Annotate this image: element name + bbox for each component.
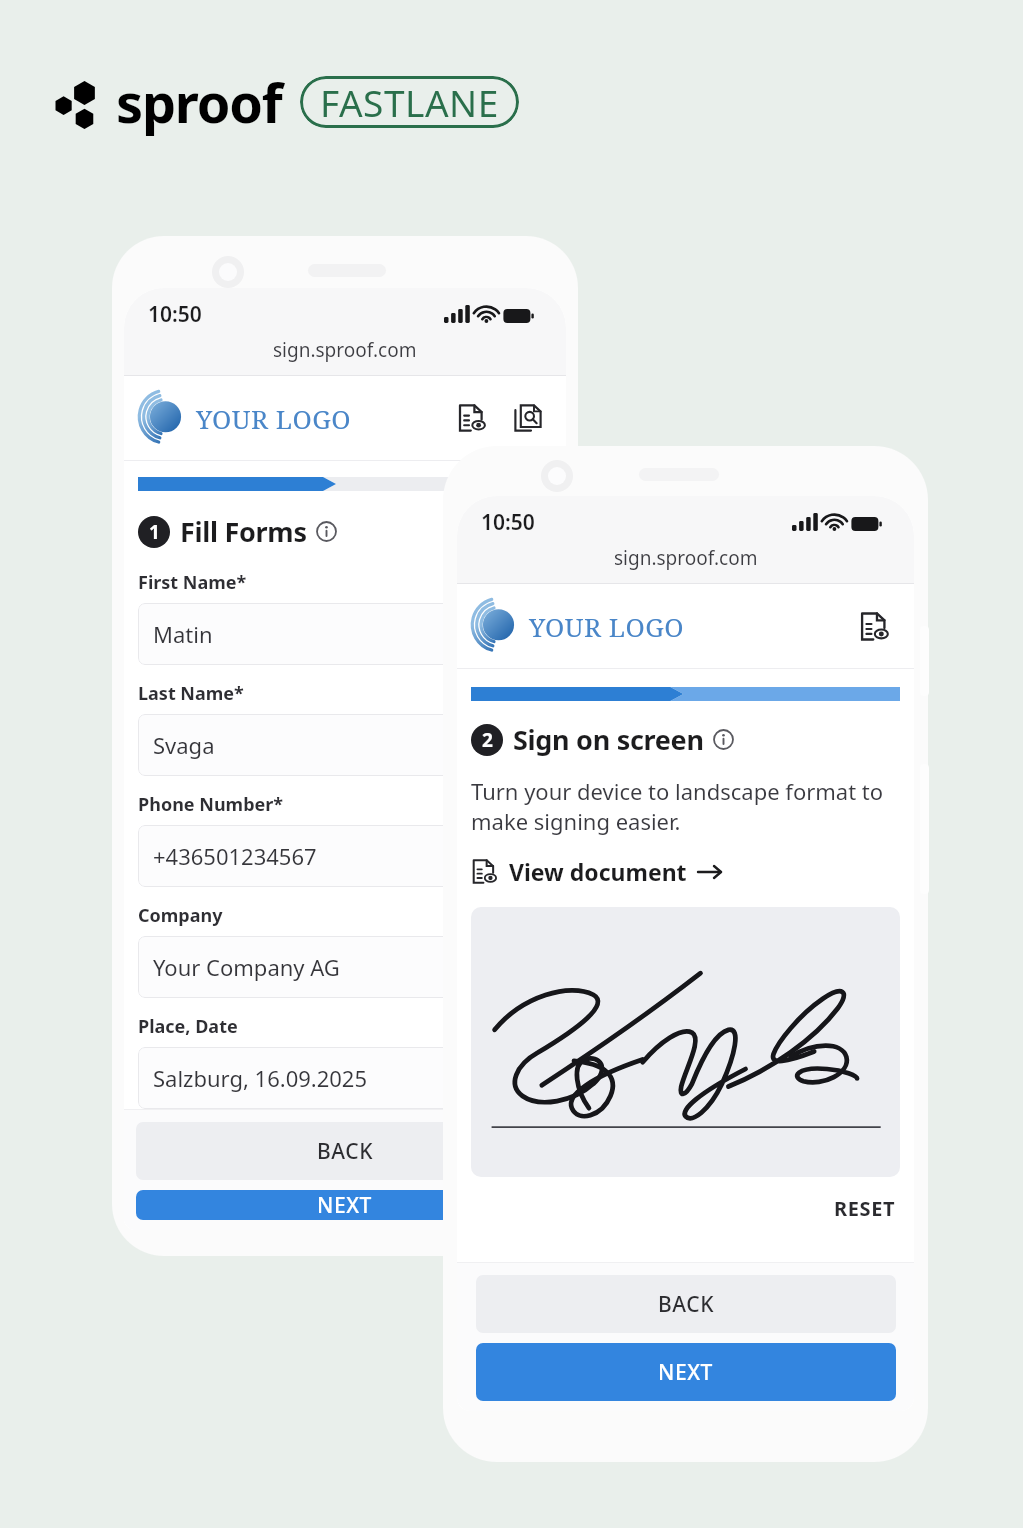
staticText: NEXT — [317, 1191, 373, 1220]
button[interactable]: Svaga — [138, 714, 458, 776]
button[interactable]: View document — [852, 604, 896, 648]
staticText: First Name* — [138, 570, 247, 595]
staticText: Salzburg, 16.09.2025 — [153, 1063, 368, 1093]
staticText: Svaga — [153, 730, 215, 760]
staticText: 1 — [149, 519, 160, 545]
staticText: Turn your device to landscape format to … — [471, 776, 900, 836]
staticText: Fill Forms — [180, 513, 307, 550]
staticText: sign.sproof.com — [273, 337, 417, 363]
staticText: FASTLANE — [320, 77, 499, 127]
staticText: Company — [138, 903, 223, 928]
staticText: View document — [509, 856, 687, 887]
button[interactable]: RESET — [830, 1191, 900, 1226]
staticText: NEXT — [658, 1358, 714, 1387]
button[interactable]: BACK — [136, 1122, 554, 1180]
button[interactable]: NEXT — [136, 1190, 554, 1220]
staticText: sign.sproof.com — [614, 545, 758, 571]
staticText: 10:50 — [481, 508, 535, 537]
staticText: Sign on screen — [513, 721, 704, 758]
staticText: +436501234567 — [153, 841, 317, 871]
staticText: BACK — [658, 1290, 715, 1319]
button[interactable]: Signature pad — [471, 907, 900, 1177]
button[interactable]: Your Company AG — [138, 936, 458, 998]
staticText: Phone Number* — [138, 792, 284, 817]
button[interactable]: +436501234567 — [138, 825, 458, 887]
staticText: Last Name* — [138, 681, 244, 706]
button[interactable]: Inspect document — [508, 398, 548, 438]
staticText: YOUR LOGO — [529, 609, 685, 644]
button[interactable]: Salzburg, 16.09.2025 — [138, 1047, 458, 1109]
button[interactable]: Matin — [138, 603, 458, 665]
staticText: RESET — [834, 1195, 896, 1222]
staticText: Place, Date — [138, 1014, 238, 1039]
staticText: 10:50 — [148, 300, 202, 329]
staticText: BACK — [317, 1137, 374, 1166]
staticText: 2 — [482, 727, 493, 753]
staticText: sproof — [116, 65, 282, 139]
staticText: Your Company AG — [153, 952, 340, 982]
button[interactable]: View document — [452, 398, 492, 438]
button[interactable]: BACK — [476, 1275, 896, 1333]
staticText: Matin — [153, 619, 213, 649]
button[interactable]: View document — [471, 854, 723, 889]
staticText: YOUR LOGO — [196, 401, 352, 436]
button[interactable]: NEXT — [476, 1343, 896, 1401]
